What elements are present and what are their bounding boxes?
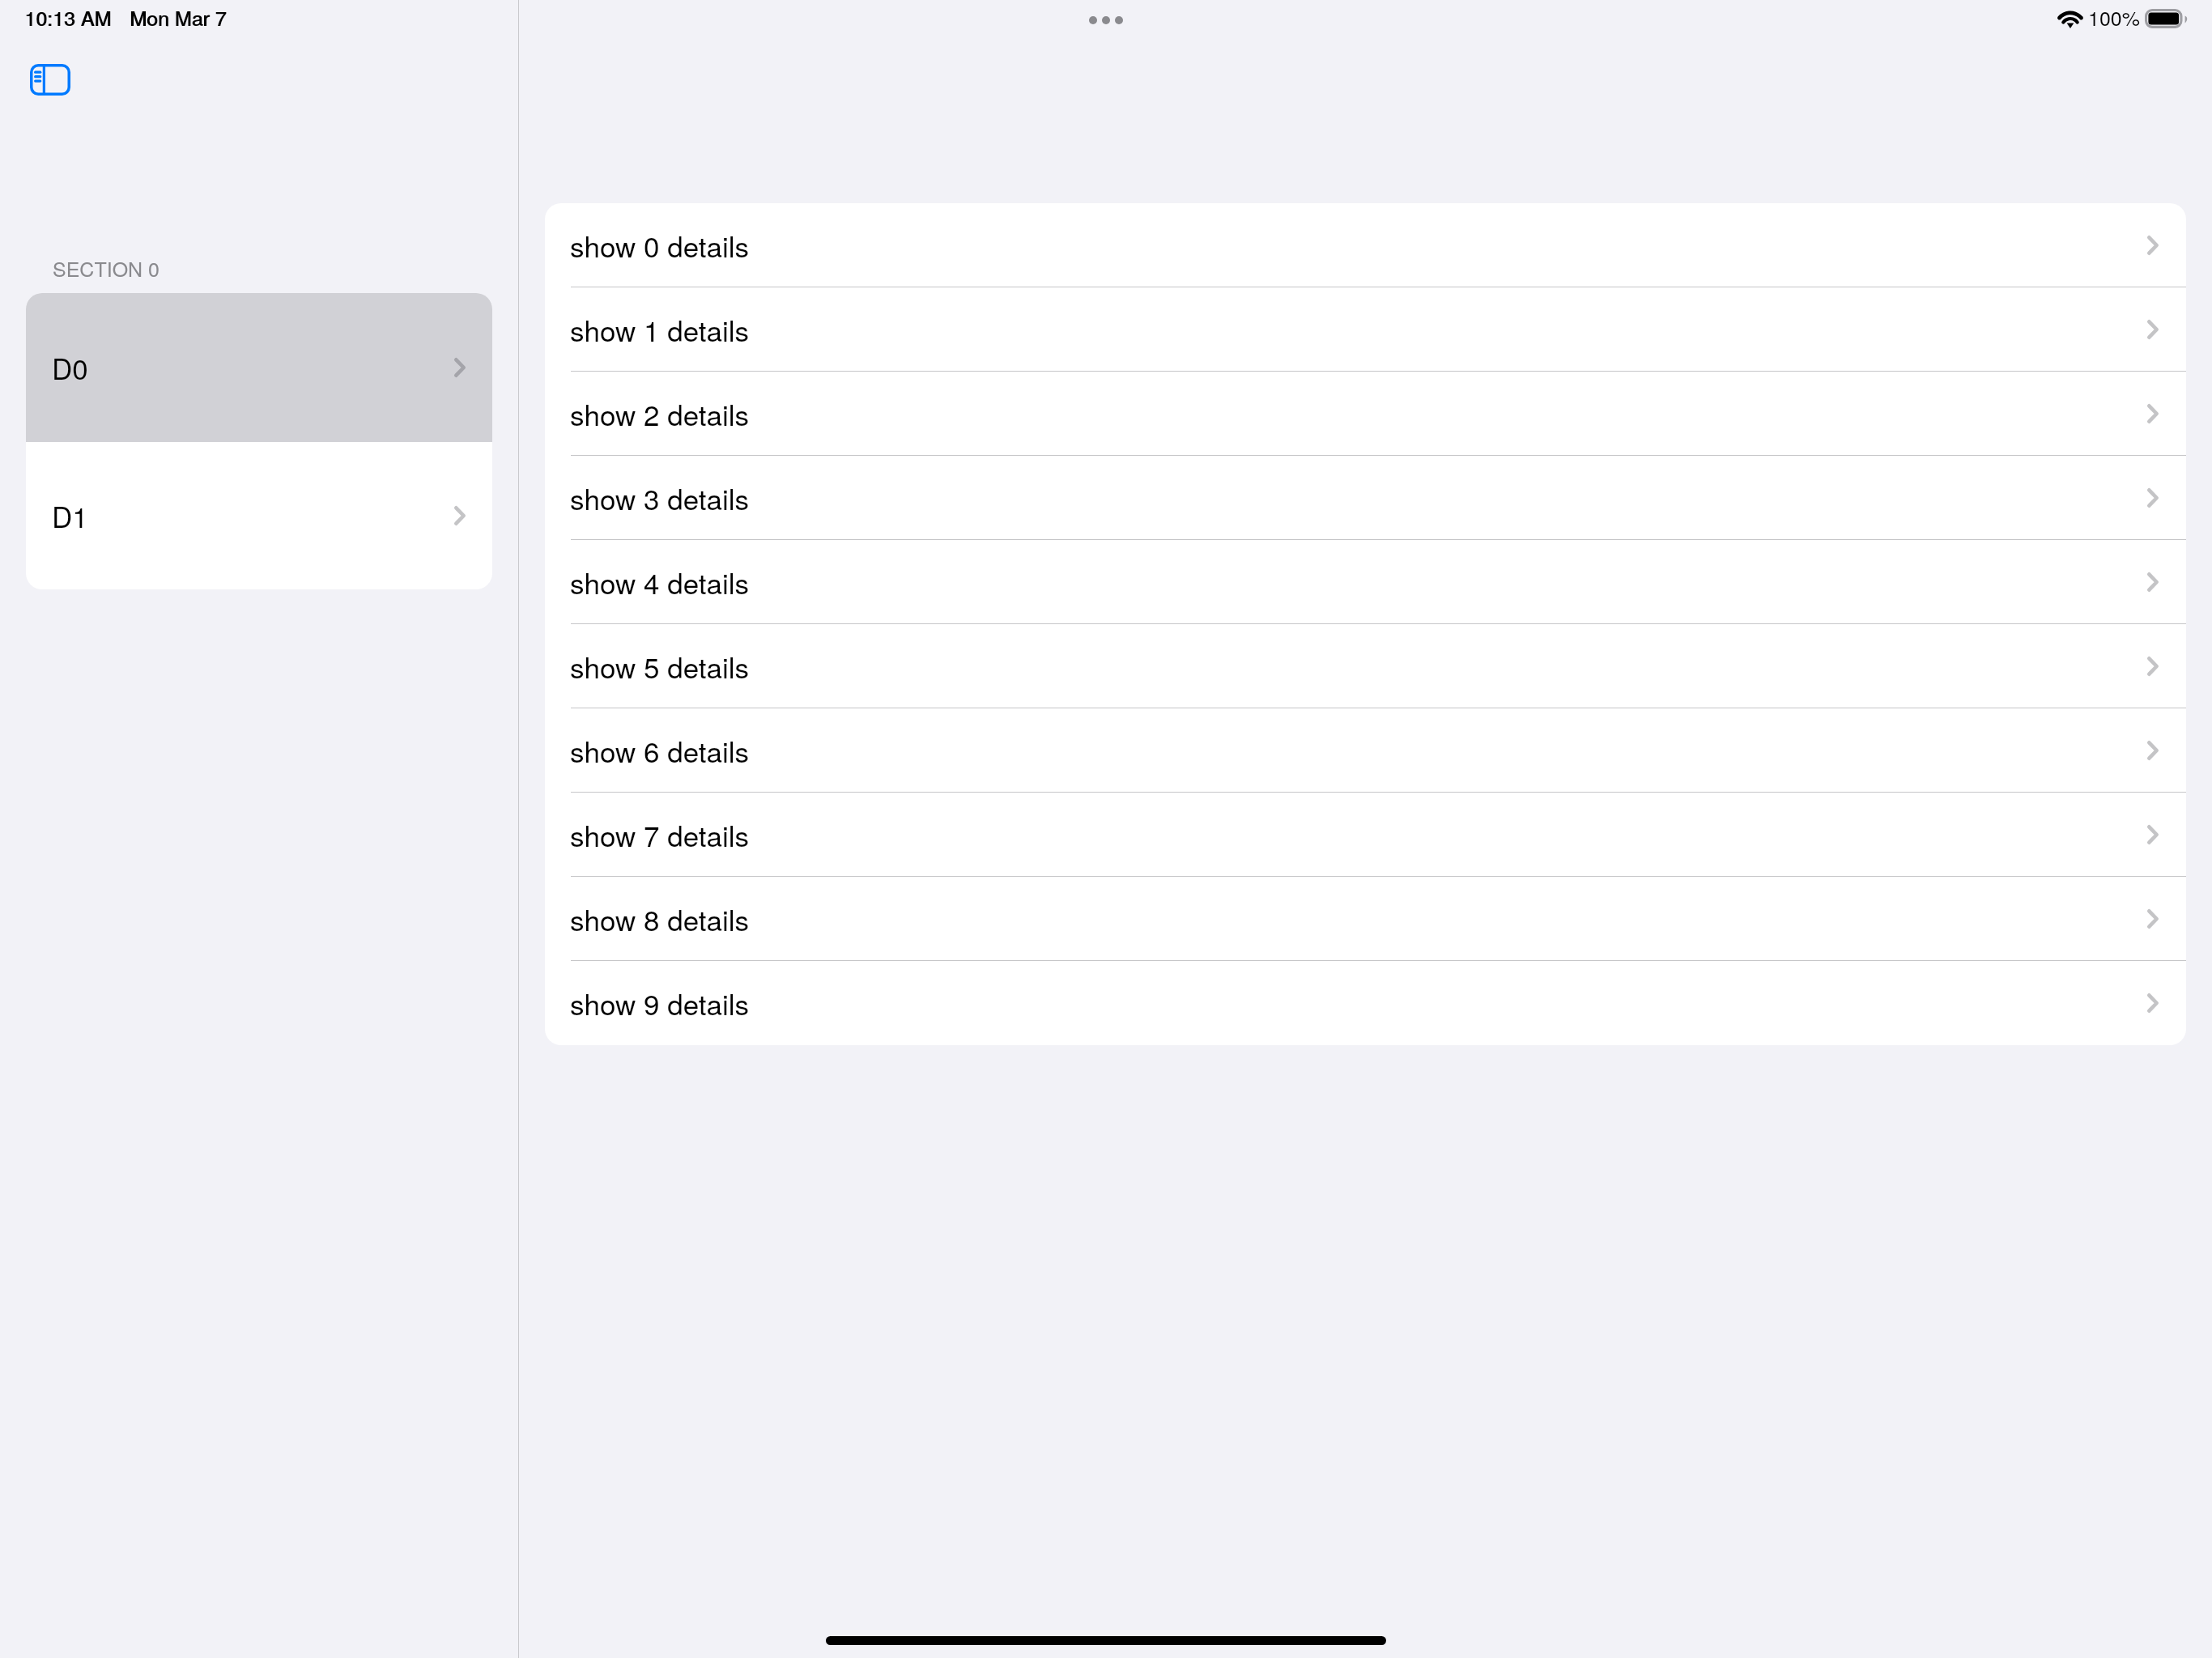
staticText: Mon Mar 7 — [130, 2, 227, 32]
button[interactable]: show 0 details — [545, 203, 2186, 287]
staticText: show 9 details — [570, 983, 750, 1023]
staticText: show 0 details — [570, 225, 750, 266]
staticText: D1 — [52, 495, 88, 536]
button[interactable]: show 4 details — [545, 540, 2186, 623]
staticText: Mon Mar 7 — [130, 2, 228, 32]
staticText: show 4 details — [570, 562, 750, 602]
staticText: 10:13 AM — [25, 2, 113, 32]
staticText: SECTION 0 — [53, 253, 160, 283]
button[interactable]: show 3 details — [545, 456, 2186, 539]
button[interactable]: show 7 details — [545, 793, 2186, 876]
button[interactable]: show 8 details — [545, 877, 2186, 960]
staticText: 100% — [2088, 2, 2140, 32]
staticText: show 3 details — [570, 478, 750, 518]
staticText: show 8 details — [570, 899, 750, 939]
staticText: show 7 details — [570, 814, 750, 855]
button[interactable]: show 9 details — [545, 961, 2186, 1045]
button[interactable]: D1 — [26, 442, 492, 589]
button[interactable]: show 6 details — [545, 708, 2186, 792]
staticText: 10:13 AM — [24, 2, 112, 32]
button[interactable]: D0 — [26, 293, 492, 442]
staticText: show 1 details — [570, 309, 750, 350]
button[interactable]: show 1 details — [545, 287, 2186, 371]
button[interactable]: show 5 details — [545, 624, 2186, 708]
staticText: show 2 details — [570, 393, 750, 434]
button[interactable]: Toggle sidebar — [17, 51, 83, 108]
staticText: show 5 details — [570, 646, 750, 687]
button[interactable]: show 2 details — [545, 372, 2186, 455]
staticText: show 6 details — [570, 730, 750, 771]
staticText: D0 — [52, 347, 88, 388]
